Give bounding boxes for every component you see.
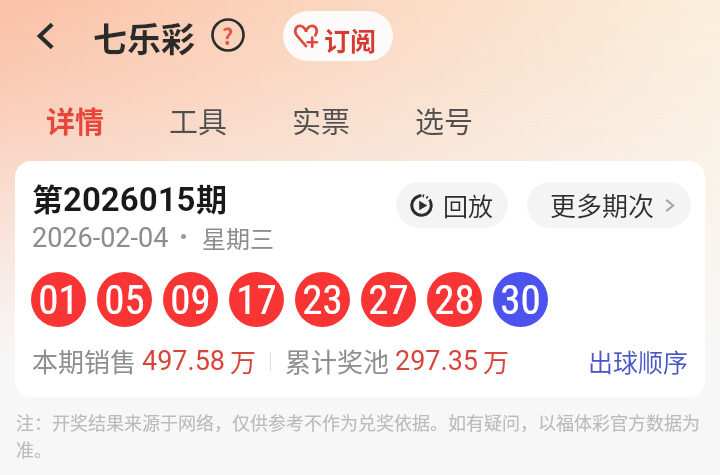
staticText: 297.35	[395, 345, 478, 377]
staticText: ?	[222, 19, 234, 51]
staticText: 选号	[415, 99, 474, 141]
staticText: 第	[32, 175, 63, 220]
staticText: 七乐彩	[93, 13, 195, 62]
button[interactable]: Back	[22, 12, 70, 60]
button[interactable]: 订阅	[283, 11, 393, 61]
staticText: 出球顺序	[588, 343, 689, 379]
button[interactable]: 更多期次	[527, 182, 691, 228]
button[interactable]: 实票	[292, 95, 351, 145]
staticText: 本期销售	[32, 342, 142, 380]
staticText: 实票	[292, 99, 351, 141]
staticText: 2026015	[63, 180, 196, 219]
staticText: 09	[170, 276, 211, 324]
staticText: 28	[434, 276, 475, 324]
button[interactable]: 出球顺序	[586, 340, 691, 382]
staticText: 01	[38, 276, 79, 324]
staticText: 工具	[169, 99, 228, 141]
staticText: 497.58	[142, 345, 225, 377]
staticText: 回放	[443, 187, 494, 223]
staticText: 17	[236, 276, 277, 324]
staticText: 23	[302, 276, 343, 324]
staticText: 27	[368, 276, 409, 324]
staticText: 订阅	[324, 21, 377, 59]
staticText: 万	[230, 342, 257, 380]
staticText: 详情	[46, 99, 105, 141]
staticText: 30	[500, 276, 541, 324]
staticText: 星期三	[202, 220, 274, 255]
staticText: 更多期次	[550, 186, 655, 224]
staticText: 2026-02-04	[32, 222, 169, 254]
button[interactable]: Help	[210, 17, 246, 53]
staticText: 累计奖池	[285, 342, 395, 380]
staticText: 万	[483, 342, 510, 380]
button[interactable]: 工具	[169, 95, 228, 145]
staticText: 注：开奖结果来源于网络，仅供参考不作为兑奖依据。如有疑问，以福体彩官方数据为准。	[16, 409, 712, 463]
staticText: 期	[196, 175, 227, 220]
staticText: 05	[104, 276, 145, 324]
button[interactable]: 回放	[396, 182, 508, 228]
button[interactable]: 详情	[46, 95, 105, 145]
button[interactable]: 选号	[415, 95, 474, 145]
